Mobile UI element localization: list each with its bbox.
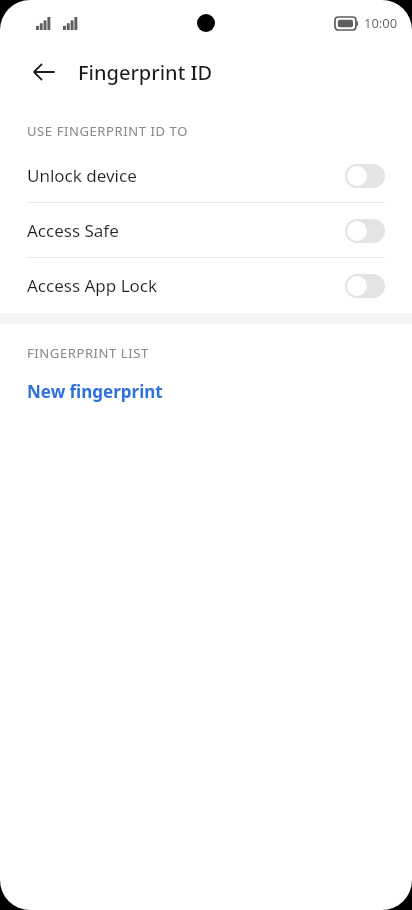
staticText: Unlock device bbox=[27, 164, 345, 187]
staticText: FINGERPRINT LIST bbox=[27, 344, 149, 362]
staticText: New fingerprint bbox=[27, 380, 163, 403]
button[interactable]: Back bbox=[22, 50, 66, 94]
staticText: Fingerprint ID bbox=[78, 59, 213, 86]
button[interactable]: Access Safe bbox=[0, 203, 412, 258]
staticText: Access Safe bbox=[27, 219, 345, 242]
button[interactable]: Access App Lock bbox=[0, 258, 412, 313]
button[interactable]: Unlock device bbox=[0, 148, 412, 203]
staticText: USE FINGERPRINT ID TO bbox=[27, 122, 188, 140]
staticText: Access App Lock bbox=[27, 274, 345, 297]
button[interactable]: New fingerprint bbox=[0, 370, 412, 412]
staticText: 10:00 bbox=[364, 14, 398, 32]
